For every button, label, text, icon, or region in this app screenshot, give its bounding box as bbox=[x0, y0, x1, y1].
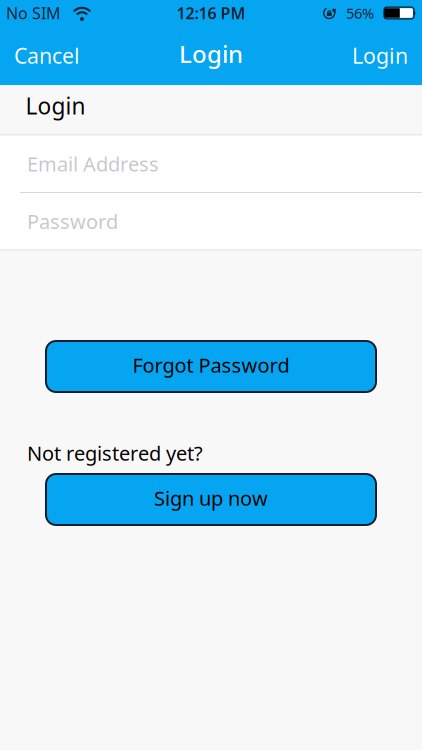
staticText: Not registered yet? bbox=[27, 440, 203, 466]
button[interactable]: Forgot Password bbox=[46, 341, 376, 392]
staticText: Login bbox=[352, 41, 408, 70]
staticText: No SIM bbox=[6, 2, 61, 24]
staticText: Login bbox=[25, 91, 85, 121]
button[interactable]: Sign up now bbox=[46, 474, 376, 525]
staticText: Password bbox=[27, 208, 118, 235]
staticText: Sign up now bbox=[154, 485, 268, 511]
button[interactable]: Password bbox=[0, 193, 422, 249]
button[interactable]: Cancel bbox=[14, 41, 80, 70]
staticText: 12:16 PM bbox=[176, 2, 245, 24]
staticText: Email Address bbox=[27, 150, 159, 177]
staticText: 56% bbox=[346, 3, 374, 23]
button[interactable]: Login bbox=[352, 41, 408, 70]
staticText: Cancel bbox=[14, 41, 80, 70]
button[interactable]: Email Address bbox=[0, 135, 422, 192]
staticText: Login bbox=[179, 38, 243, 70]
staticText: Forgot Password bbox=[132, 352, 289, 378]
